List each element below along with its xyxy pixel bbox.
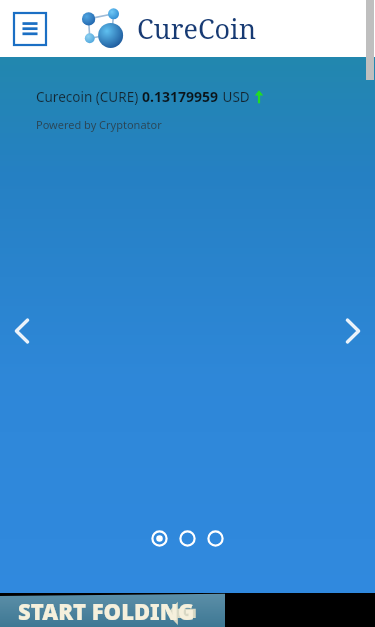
button[interactable]: Slide 3 <box>207 530 224 547</box>
staticText: START FOLDING <box>18 596 195 626</box>
button[interactable]: Previous slide <box>0 309 44 353</box>
button[interactable]: Slide 2 <box>179 530 196 547</box>
staticText: Curecoin (CURE) <box>36 88 142 106</box>
staticText: CureCoin <box>137 10 257 47</box>
button[interactable]: Slide 1 <box>151 530 168 547</box>
staticText: 0.13179959 <box>142 87 219 106</box>
staticText: Powered by Cryptonator <box>36 117 162 132</box>
button[interactable]: Open menu <box>14 13 46 45</box>
button[interactable]: Next slide <box>331 309 375 353</box>
staticText: USD <box>219 88 254 106</box>
